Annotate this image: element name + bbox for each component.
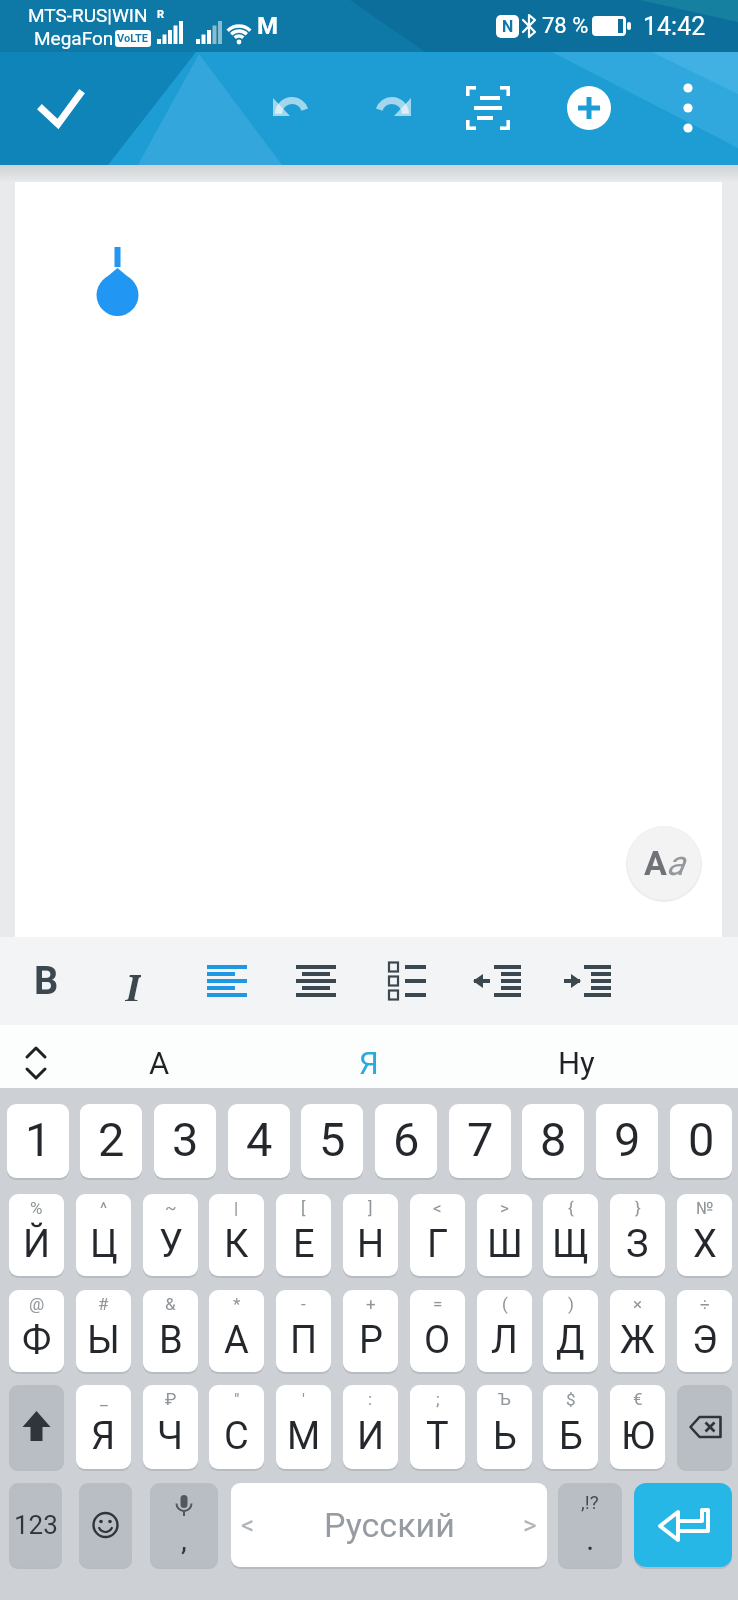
button[interactable]: 8 — [522, 1104, 584, 1178]
button[interactable]: Русский — [231, 1483, 547, 1567]
button[interactable]: " — [209, 1385, 264, 1469]
button[interactable]: 5 — [301, 1104, 363, 1178]
button[interactable]: 4 — [228, 1104, 290, 1178]
button[interactable]: 0 — [670, 1104, 732, 1178]
staticText: ; — [436, 1389, 440, 1409]
button[interactable] — [465, 949, 529, 1013]
staticText: Русский — [324, 1505, 455, 1545]
staticText: Ф — [22, 1318, 52, 1363]
button[interactable]: * — [209, 1290, 264, 1372]
button[interactable] — [677, 1385, 732, 1469]
button[interactable]: ; — [410, 1385, 465, 1469]
button[interactable]: € — [610, 1385, 665, 1469]
staticText: Ъ — [498, 1389, 511, 1409]
button[interactable]: ₽ — [143, 1385, 198, 1469]
staticText: Е — [293, 1222, 315, 1267]
staticText: З — [626, 1222, 649, 1267]
staticText: ₽ — [165, 1389, 177, 1409]
button[interactable]: ÷ — [677, 1290, 732, 1372]
button[interactable]: @ — [9, 1290, 64, 1372]
button[interactable]: ,!? — [558, 1483, 622, 1567]
button[interactable] — [15, 182, 722, 937]
button[interactable]: Aa — [627, 826, 701, 900]
button[interactable] — [194, 949, 258, 1013]
button[interactable] — [86, 1025, 232, 1088]
button[interactable] — [28, 128, 92, 192]
button[interactable]: _ — [76, 1385, 131, 1469]
button[interactable]: ' — [276, 1385, 331, 1469]
button[interactable]: } — [610, 1194, 665, 1276]
button[interactable]: 6 — [375, 1104, 437, 1178]
staticText: Ы — [87, 1318, 120, 1363]
button[interactable] — [101, 949, 165, 1013]
button[interactable] — [456, 128, 520, 192]
staticText: 2 — [98, 1112, 125, 1167]
staticText: 7 — [467, 1112, 494, 1167]
button[interactable]: 2 — [80, 1104, 142, 1178]
staticText: Ну — [558, 1045, 595, 1081]
staticText: MegaFon — [34, 27, 114, 49]
staticText: 8 — [540, 1112, 567, 1167]
button[interactable]: < — [410, 1194, 465, 1276]
staticText: . — [586, 1520, 595, 1558]
staticText: Т — [426, 1414, 449, 1459]
button[interactable]: : — [343, 1385, 398, 1469]
staticText: Н — [357, 1222, 385, 1267]
staticText: П — [290, 1318, 318, 1363]
staticText: М — [287, 1414, 321, 1459]
button[interactable]: > — [477, 1194, 532, 1276]
button[interactable] — [296, 1025, 442, 1088]
button[interactable]: ( — [477, 1290, 532, 1372]
button[interactable] — [284, 949, 348, 1013]
staticText: ] — [368, 1198, 373, 1218]
button[interactable] — [0, 1025, 73, 1088]
button[interactable] — [503, 1025, 649, 1088]
button[interactable]: Ъ — [477, 1385, 532, 1469]
button[interactable]: ) — [543, 1290, 598, 1372]
button[interactable]: ] — [343, 1194, 398, 1276]
button[interactable] — [14, 949, 78, 1013]
button[interactable]: × — [610, 1290, 665, 1372]
button[interactable]: 7 — [449, 1104, 511, 1178]
button[interactable] — [557, 128, 621, 192]
button[interactable]: + — [343, 1290, 398, 1372]
button[interactable]: { — [543, 1194, 598, 1276]
button[interactable] — [259, 128, 323, 192]
button[interactable]: 1 — [7, 1104, 69, 1178]
button[interactable] — [656, 128, 720, 192]
button[interactable] — [634, 1483, 732, 1567]
staticText: Ц — [90, 1222, 118, 1267]
staticText: Ч — [157, 1414, 184, 1459]
button[interactable]: № — [677, 1194, 732, 1276]
staticText: Р — [359, 1318, 383, 1363]
staticText: R — [157, 8, 165, 21]
button[interactable]: 123 — [9, 1483, 62, 1567]
button[interactable]: & — [143, 1290, 198, 1372]
staticText: Ю — [621, 1414, 655, 1459]
staticText: Э — [692, 1318, 718, 1363]
staticText: { — [568, 1198, 574, 1218]
button[interactable]: # — [76, 1290, 131, 1372]
button[interactable]: $ — [543, 1385, 598, 1469]
button[interactable]: ^ — [76, 1194, 131, 1276]
button[interactable]: % — [9, 1194, 64, 1276]
button[interactable] — [9, 1385, 64, 1469]
button[interactable]: - — [276, 1290, 331, 1372]
staticText: × — [633, 1294, 643, 1314]
staticText: M — [257, 12, 279, 40]
button[interactable] — [555, 949, 619, 1013]
staticText: 3 — [172, 1112, 199, 1167]
button[interactable]: ~ — [143, 1194, 198, 1276]
staticText: ÷ — [700, 1294, 710, 1314]
button[interactable]: 9 — [596, 1104, 658, 1178]
button[interactable]: [ — [276, 1194, 331, 1276]
button[interactable] — [361, 128, 425, 192]
button[interactable]: , — [150, 1483, 218, 1567]
button[interactable] — [79, 1483, 132, 1567]
staticText: 14:42 — [643, 12, 706, 41]
button[interactable]: | — [209, 1194, 264, 1276]
button[interactable] — [375, 949, 439, 1013]
button[interactable]: = — [410, 1290, 465, 1372]
button[interactable]: 3 — [154, 1104, 216, 1178]
staticText: VoLTE — [117, 32, 149, 45]
